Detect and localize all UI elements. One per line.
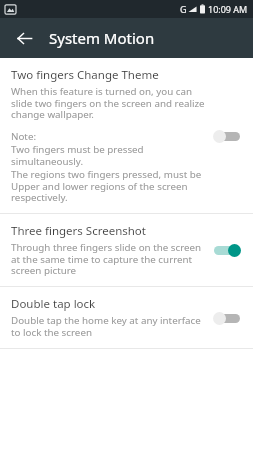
staticText: Two fingers Change Theme bbox=[11, 67, 159, 83]
button[interactable]: Double tap lock bbox=[0, 287, 253, 348]
button[interactable]: Two fingers Change Theme bbox=[0, 58, 253, 213]
staticText: Double tap the home key at any interface… bbox=[11, 314, 208, 339]
staticText: The regions two fingers pressed, must be… bbox=[11, 168, 208, 204]
staticText: 10:09 AM bbox=[208, 3, 248, 15]
staticText: Through three fingers slide on the scree… bbox=[11, 241, 208, 277]
staticText: Three fingers Screenshot bbox=[11, 223, 146, 239]
staticText: G bbox=[180, 3, 187, 15]
button[interactable]: Toggle on bbox=[212, 241, 242, 259]
staticText: Two fingers must be pressed simultaneous… bbox=[11, 143, 208, 168]
staticText: Note: bbox=[11, 130, 37, 143]
button[interactable]: Back bbox=[8, 22, 40, 54]
button[interactable]: Toggle off bbox=[212, 127, 242, 145]
button[interactable]: Three fingers Screenshot bbox=[0, 214, 253, 286]
staticText: When this feature is turned on, you can … bbox=[11, 85, 208, 121]
button[interactable]: Toggle off bbox=[212, 309, 242, 327]
staticText: System Motion bbox=[49, 28, 155, 48]
staticText: Double tap lock bbox=[11, 296, 96, 312]
